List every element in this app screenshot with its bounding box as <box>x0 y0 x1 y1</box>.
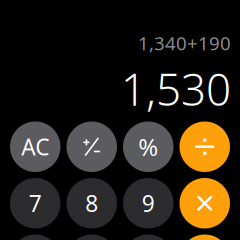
staticText: 1,530 <box>121 59 231 118</box>
staticText: AC <box>21 132 49 162</box>
staticText: 1,340+190 <box>138 31 231 55</box>
button[interactable]: Multiply <box>179 178 230 228</box>
button[interactable]: % <box>123 121 173 172</box>
button[interactable]: 5 <box>66 234 117 240</box>
staticText: 9 <box>142 188 155 218</box>
staticText: % <box>138 131 158 163</box>
button[interactable]: AC <box>10 121 60 172</box>
staticText: 7 <box>29 188 42 218</box>
button[interactable]: 6 <box>123 234 173 240</box>
button[interactable]: Minus <box>179 234 230 240</box>
button[interactable]: Plus or minus <box>66 121 117 172</box>
button[interactable]: 9 <box>123 178 173 228</box>
button[interactable]: 7 <box>10 178 60 228</box>
button[interactable]: Divide <box>179 121 230 172</box>
button[interactable]: 4 <box>10 234 60 240</box>
staticText: 8 <box>85 188 98 218</box>
button[interactable]: 8 <box>66 178 117 228</box>
